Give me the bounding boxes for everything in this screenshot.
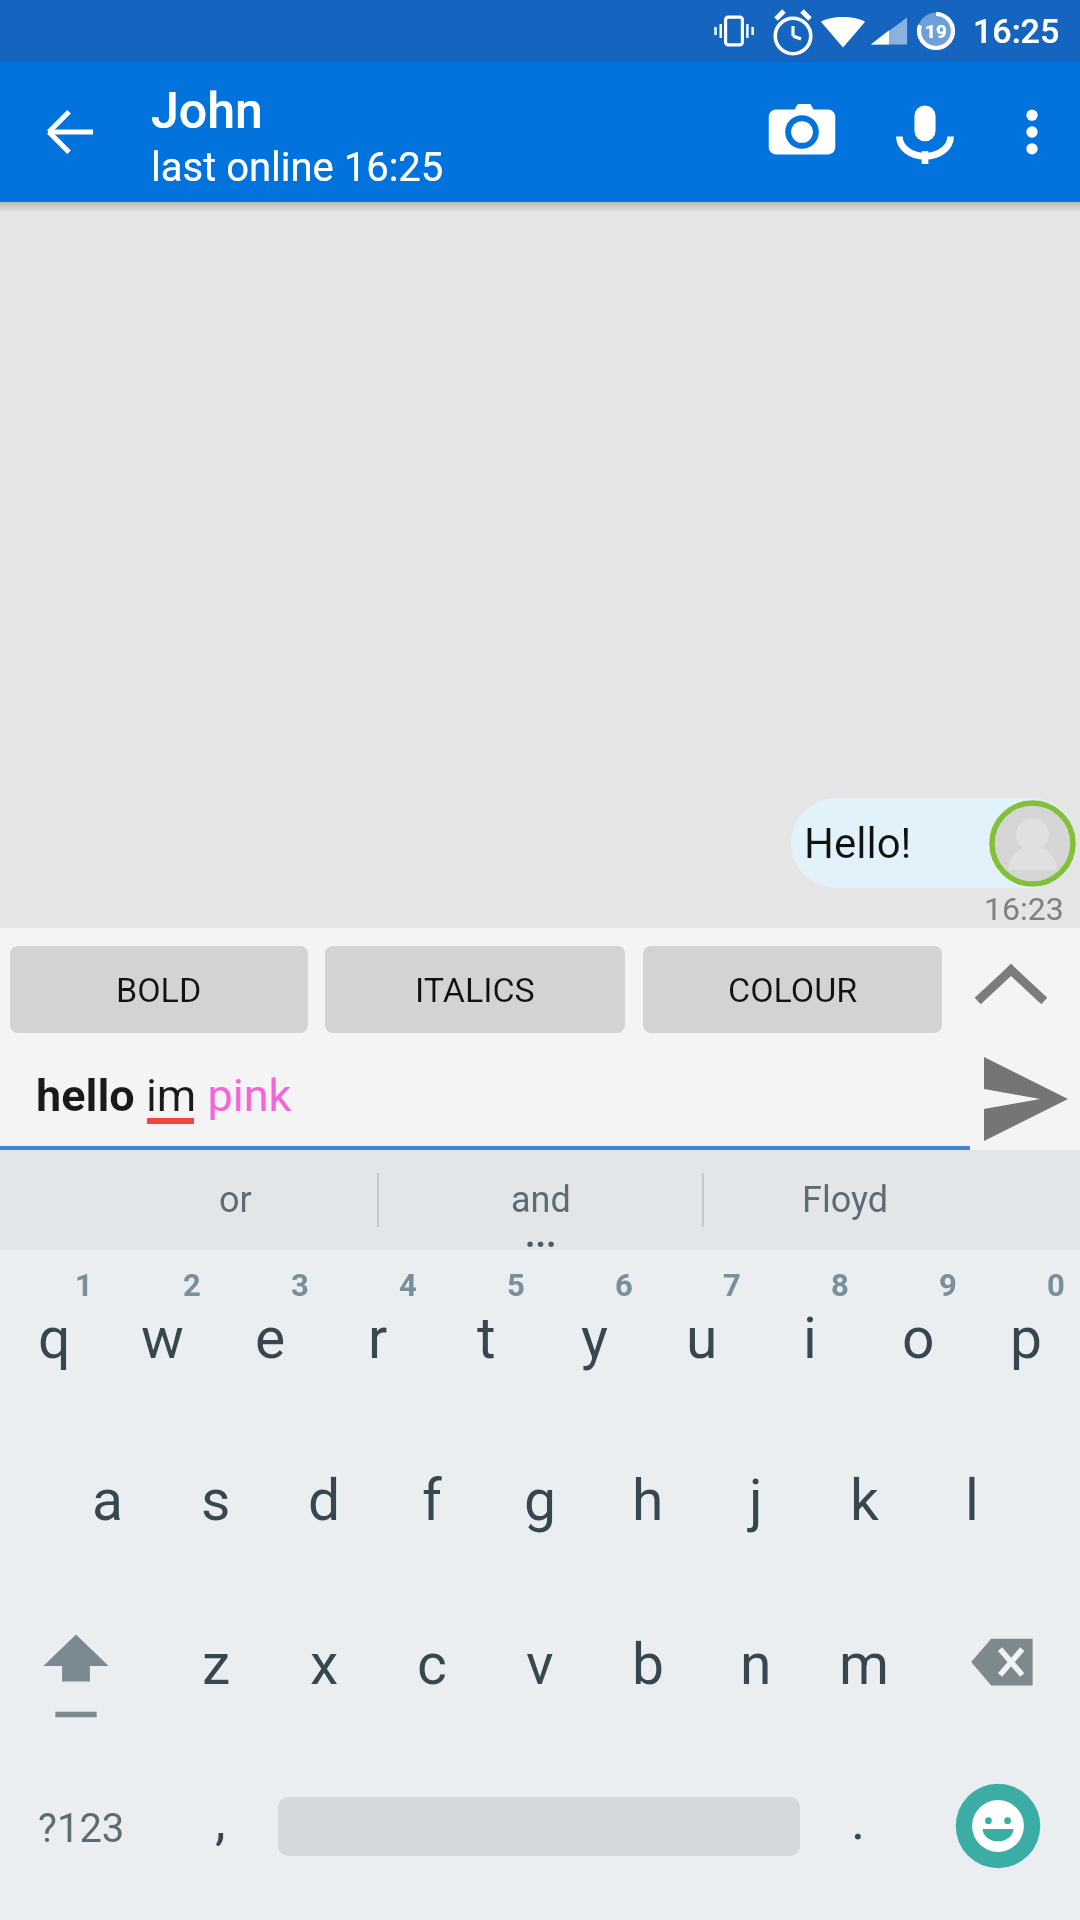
- staticText: ?123: [38, 1805, 125, 1852]
- button[interactable]: ITALICS: [325, 946, 625, 1033]
- staticText: John: [151, 82, 263, 141]
- staticText: ITALICS: [415, 970, 535, 1010]
- button[interactable]: v: [486, 1584, 594, 1752]
- staticText: COLOUR: [728, 970, 858, 1010]
- button[interactable]: s: [162, 1417, 270, 1584]
- button[interactable]: y: [540, 1250, 648, 1417]
- staticText: u: [686, 1305, 718, 1372]
- staticText: y: [581, 1305, 608, 1372]
- staticText: f: [422, 1467, 442, 1534]
- button[interactable]: z: [162, 1584, 270, 1752]
- staticText: last online 16:25: [151, 144, 444, 191]
- staticText: i: [803, 1305, 817, 1372]
- staticText: j: [749, 1467, 763, 1534]
- button[interactable]: ,: [162, 1752, 278, 1920]
- staticText: q: [38, 1305, 71, 1372]
- staticText: v: [526, 1631, 554, 1698]
- staticText: 19: [925, 20, 947, 42]
- staticText: 1: [75, 1267, 93, 1303]
- button[interactable]: p: [972, 1250, 1080, 1417]
- staticText: .: [851, 1789, 866, 1852]
- button[interactable]: f: [378, 1417, 486, 1584]
- button[interactable]: j: [702, 1417, 810, 1584]
- staticText: 9: [939, 1267, 957, 1303]
- button[interactable]: o: [864, 1250, 972, 1417]
- button[interactable]: c: [378, 1584, 486, 1752]
- staticText: ,: [215, 1789, 226, 1852]
- staticText: c: [417, 1631, 447, 1698]
- button[interactable]: n: [702, 1584, 810, 1752]
- staticText: h: [632, 1467, 664, 1534]
- staticText: 2: [183, 1267, 201, 1303]
- button[interactable]: Camera: [738, 62, 866, 202]
- staticText: n: [740, 1631, 772, 1698]
- button[interactable]: Voice message: [866, 62, 983, 202]
- staticText: 6: [615, 1267, 633, 1303]
- button[interactable]: t: [432, 1250, 540, 1417]
- staticText: 0: [1047, 1267, 1065, 1303]
- button[interactable]: Floyd: [693, 1150, 998, 1250]
- staticText: p: [1010, 1305, 1043, 1372]
- button[interactable]: ?123: [0, 1752, 162, 1920]
- staticText: o: [902, 1305, 935, 1372]
- staticText: d: [308, 1467, 341, 1534]
- staticText: t: [477, 1305, 496, 1372]
- button[interactable]: h: [594, 1417, 702, 1584]
- staticText: 5: [507, 1267, 525, 1303]
- staticText: w: [141, 1305, 184, 1372]
- button[interactable]: Back: [0, 62, 140, 202]
- button[interactable]: q: [0, 1250, 108, 1417]
- staticText: e: [255, 1305, 286, 1372]
- button[interactable]: BOLD: [10, 946, 308, 1033]
- button[interactable]: Send: [970, 1040, 1080, 1150]
- staticText: 8: [831, 1267, 849, 1303]
- button[interactable]: or: [83, 1150, 388, 1250]
- button[interactable]: Backspace: [918, 1584, 1080, 1752]
- staticText: 16:23: [984, 890, 1064, 928]
- button[interactable]: i: [756, 1250, 864, 1417]
- button[interactable]: Emoji: [916, 1752, 1080, 1920]
- button[interactable]: x: [270, 1584, 378, 1752]
- staticText: and: [511, 1179, 571, 1221]
- button[interactable]: e: [216, 1250, 324, 1417]
- button[interactable]: b: [594, 1584, 702, 1752]
- staticText: g: [524, 1467, 557, 1534]
- staticText: Hello!: [804, 819, 912, 868]
- staticText: l: [965, 1467, 979, 1534]
- button[interactable]: .: [800, 1752, 916, 1920]
- button[interactable]: Collapse: [942, 928, 1080, 1040]
- staticText: hello im pink: [36, 1069, 292, 1122]
- button[interactable]: COLOUR: [643, 946, 942, 1033]
- staticText: 3: [291, 1267, 309, 1303]
- button[interactable]: Shift: [0, 1584, 162, 1752]
- staticText: z: [202, 1631, 231, 1698]
- staticText: b: [632, 1631, 665, 1698]
- button[interactable]: a: [54, 1417, 162, 1584]
- button[interactable]: g: [486, 1417, 594, 1584]
- staticText: or: [219, 1179, 252, 1221]
- staticText: BOLD: [116, 970, 202, 1010]
- button[interactable]: u: [648, 1250, 756, 1417]
- button[interactable]: w: [108, 1250, 216, 1417]
- button[interactable]: Space: [278, 1752, 800, 1920]
- staticText: Floyd: [802, 1179, 889, 1221]
- button[interactable]: and: [388, 1150, 693, 1250]
- staticText: x: [310, 1631, 339, 1698]
- button[interactable]: r: [324, 1250, 432, 1417]
- button[interactable]: m: [810, 1584, 918, 1752]
- button[interactable]: d: [270, 1417, 378, 1584]
- button[interactable]: k: [810, 1417, 918, 1584]
- button[interactable]: More options: [983, 62, 1080, 202]
- button[interactable]: l: [918, 1417, 1026, 1584]
- staticText: ...: [525, 1214, 557, 1256]
- staticText: 16:25: [973, 11, 1060, 51]
- staticText: k: [850, 1467, 879, 1534]
- staticText: r: [368, 1305, 388, 1372]
- staticText: s: [201, 1467, 231, 1534]
- staticText: 7: [723, 1267, 741, 1303]
- staticText: 4: [399, 1267, 417, 1303]
- staticText: m: [839, 1631, 889, 1698]
- staticText: a: [92, 1467, 124, 1534]
